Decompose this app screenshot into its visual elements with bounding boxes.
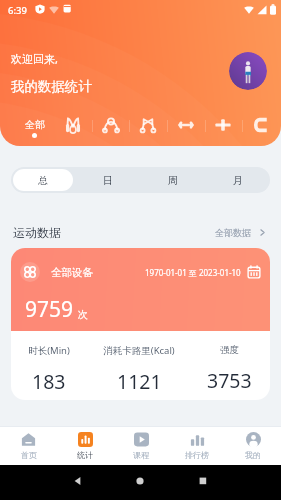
button[interactable]: Yoga xyxy=(98,112,124,138)
staticText: 我的 xyxy=(245,450,261,460)
staticText: 3753 xyxy=(207,367,252,394)
button[interactable]: Back xyxy=(68,471,88,491)
staticText: 183 xyxy=(32,368,66,395)
staticText: 我的数据统计 xyxy=(11,78,92,95)
staticText: 运动数据 xyxy=(13,225,61,240)
staticText: 日 xyxy=(103,174,113,187)
staticText: 1121 xyxy=(117,368,162,395)
button[interactable]: 总 xyxy=(13,169,73,191)
button[interactable]: 日 xyxy=(77,169,138,191)
staticText: 欢迎回来, xyxy=(11,51,58,66)
button[interactable]: 统计 xyxy=(57,426,113,465)
staticText: 全部设备 xyxy=(51,266,93,279)
staticText: 强度 xyxy=(220,344,239,356)
button[interactable]: Dumbbell xyxy=(173,112,199,138)
button[interactable]: Weights xyxy=(210,112,236,138)
button[interactable]: Stretch xyxy=(135,112,161,138)
staticText: 消耗卡路里(Kcal) xyxy=(103,344,175,357)
staticText: 周 xyxy=(168,174,178,187)
staticText: 课程 xyxy=(133,450,149,460)
button[interactable]: 我的 xyxy=(225,426,281,465)
button[interactable]: 首页 xyxy=(0,426,57,465)
button[interactable]: Recents xyxy=(193,471,213,491)
staticText: 9759 xyxy=(25,295,74,324)
staticText: 全部数据 xyxy=(215,227,251,238)
button[interactable]: Equipment xyxy=(248,112,274,138)
staticText: 排行榜 xyxy=(185,450,209,460)
staticText: 时长(Min) xyxy=(28,344,70,357)
staticText: 月 xyxy=(233,174,243,187)
button[interactable]: 课程 xyxy=(113,426,169,465)
button[interactable]: 全部数据 xyxy=(213,227,269,238)
button[interactable]: 周 xyxy=(142,169,203,191)
staticText: 1970-01-01 至 2023-01-10 xyxy=(145,267,241,278)
button[interactable]: 全部 xyxy=(25,118,45,131)
button[interactable]: Select date range xyxy=(247,265,261,279)
staticText: 全部 xyxy=(25,118,45,131)
staticText: 总 xyxy=(38,174,48,187)
button[interactable]: Jump rope xyxy=(60,112,86,138)
staticText: 统计 xyxy=(77,450,93,460)
button[interactable]: 月 xyxy=(207,169,268,191)
button[interactable]: 排行榜 xyxy=(169,426,225,465)
staticText: 首页 xyxy=(21,450,37,460)
staticText: 6:39 xyxy=(8,4,27,17)
staticText: 次 xyxy=(78,308,88,321)
button[interactable]: Profile avatar xyxy=(229,52,267,90)
button[interactable]: Home xyxy=(130,471,150,491)
